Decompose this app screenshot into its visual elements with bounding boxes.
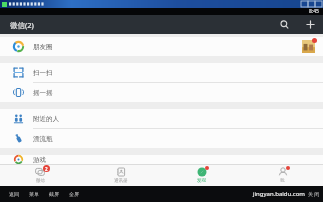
staticText: 摇一摇	[33, 89, 53, 97]
staticText: 游戏	[33, 156, 46, 164]
button[interactable]: 朋友圈	[0, 37, 323, 56]
staticText: 8:45	[309, 8, 319, 15]
staticText: 菜单	[29, 191, 39, 197]
staticText: 关 闭	[308, 191, 320, 198]
button[interactable]: 2	[0, 165, 80, 186]
staticText: 返回	[9, 191, 19, 197]
button[interactable]: 漂流瓶	[0, 129, 323, 148]
staticText: 2	[45, 166, 48, 172]
button[interactable]: 摇一摇	[0, 83, 323, 102]
button[interactable]: 扫一扫	[0, 63, 323, 82]
staticText: 截屏	[49, 191, 59, 197]
button[interactable]: 截屏	[44, 189, 64, 199]
button[interactable]: 菜单	[24, 189, 44, 199]
staticText: 微信(2)	[10, 20, 34, 30]
button[interactable]: 附近的人	[0, 109, 323, 128]
button[interactable]: Add	[297, 15, 323, 34]
button[interactable]: 我	[242, 165, 323, 186]
button[interactable]: 通讯录	[80, 165, 161, 186]
button[interactable]: Search	[271, 15, 297, 34]
button[interactable]: 全屏	[64, 189, 84, 199]
staticText: 朋友圈	[33, 43, 53, 51]
button[interactable]: 返回	[4, 189, 24, 199]
button[interactable]: 游戏	[0, 155, 323, 164]
staticText: jingyan.baidu.com	[253, 190, 305, 198]
staticText: 漂流瓶	[33, 135, 53, 143]
staticText: 我	[280, 178, 285, 184]
staticText: 通讯录	[114, 178, 128, 184]
staticText: 附近的人	[33, 115, 59, 123]
staticText: 全屏	[69, 191, 79, 197]
staticText: 扫一扫	[33, 69, 53, 77]
staticText: 微信	[36, 178, 45, 184]
staticText: 发现	[197, 178, 206, 184]
button[interactable]: 发现	[161, 165, 242, 186]
